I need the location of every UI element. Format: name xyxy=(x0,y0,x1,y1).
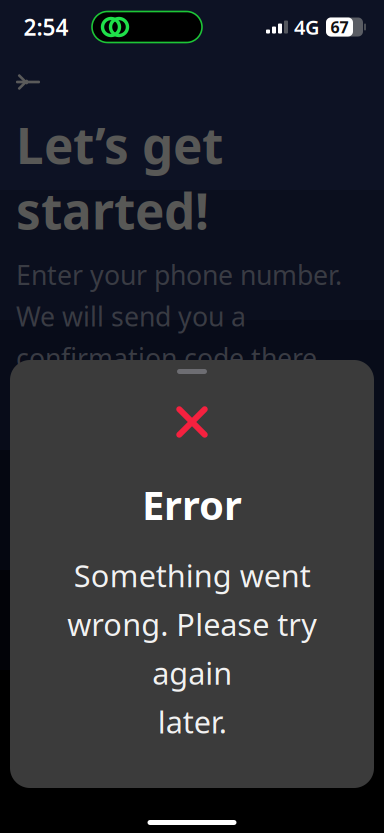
button[interactable]: Already have an account? Log in xyxy=(0,474,347,573)
staticText: Error xyxy=(142,478,242,531)
button[interactable]: 908 558 902 xyxy=(124,401,372,474)
staticText: 2:54 xyxy=(23,12,68,42)
staticText: Enter your phone number. We will send yo… xyxy=(16,257,342,375)
staticText: 908 558 902 xyxy=(142,417,320,458)
staticText: Already have an account? Log in xyxy=(16,492,347,567)
staticText: Let’s get started! xyxy=(16,112,223,243)
staticText: 67 xyxy=(330,16,348,38)
staticText: 4G xyxy=(294,14,320,40)
button[interactable]: Back xyxy=(6,62,50,102)
staticText: Something went wrong. Please try again l… xyxy=(67,555,317,742)
